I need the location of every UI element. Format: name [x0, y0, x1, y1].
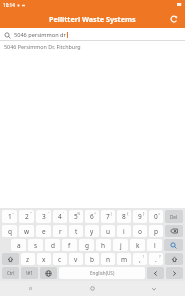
button[interactable]: r: [53, 225, 67, 237]
staticText: ^: [94, 211, 97, 216]
button[interactable]: q: [2, 225, 17, 237]
button[interactable]: `: [53, 210, 67, 223]
staticText: w: [24, 227, 30, 236]
staticText: 10:14: [3, 2, 15, 8]
staticText: 2: [25, 212, 29, 221]
button[interactable]: 5046 Persimmon Dr, Fitchburg: [0, 41, 185, 52]
staticText: x: [42, 255, 46, 264]
staticText: Pellitteri Waste Systems: [49, 14, 136, 24]
staticText: 9: [138, 212, 142, 221]
button[interactable]: w: [19, 225, 34, 237]
button[interactable]: z: [21, 253, 35, 265]
staticText: m: [121, 255, 128, 264]
button[interactable]: 5046 persimmon dr: [0, 28, 185, 41]
staticText: z: [26, 255, 30, 264]
button[interactable]: g: [79, 239, 94, 251]
button[interactable]: l: [147, 239, 162, 251]
staticText: t: [75, 227, 78, 236]
button[interactable]: y: [85, 225, 99, 237]
button[interactable]: u: [101, 225, 115, 237]
button[interactable]: p: [149, 225, 163, 237]
button[interactable]: |: [101, 210, 115, 223]
staticText: 5046 Persimmon Dr, Fitchburg: [4, 43, 81, 50]
button[interactable]: n: [101, 253, 115, 265]
staticText: e: [42, 227, 46, 236]
button[interactable]: [147, 267, 164, 279]
button[interactable]: ?: [149, 253, 163, 265]
staticText: 8: [122, 212, 126, 221]
staticText: a: [17, 241, 21, 250]
staticText: 4: [58, 212, 62, 221]
button[interactable]: ~: [2, 210, 17, 223]
button[interactable]: x: [37, 253, 51, 265]
button[interactable]: ': [36, 210, 51, 223]
button[interactable]: Ctrl: [2, 267, 19, 279]
button[interactable]: {: [117, 210, 131, 223]
button[interactable]: [165, 253, 183, 265]
button[interactable]: ": [19, 210, 34, 223]
staticText: %: [77, 211, 81, 216]
staticText: ?: [159, 254, 161, 259]
button[interactable]: Recent apps: [123, 281, 185, 296]
staticText: 6: [90, 212, 94, 221]
button[interactable]: English(US): [59, 267, 145, 279]
staticText: y: [90, 227, 94, 236]
button[interactable]: [40, 267, 57, 279]
staticText: v: [74, 255, 78, 264]
staticText: 5046 persimmon dr: [14, 31, 66, 39]
staticText: 0: [154, 212, 158, 221]
staticText: c: [58, 255, 62, 264]
button[interactable]: ^: [85, 210, 99, 223]
button[interactable]: Back: [0, 281, 61, 296]
staticText: |: [110, 211, 113, 216]
staticText: Del: [170, 214, 178, 220]
button[interactable]: Refresh: [167, 12, 180, 25]
staticText: n: [106, 255, 111, 264]
staticText: f: [68, 241, 71, 250]
staticText: !#1: [26, 270, 33, 276]
button[interactable]: v: [69, 253, 83, 265]
button[interactable]: !#1: [21, 267, 38, 279]
button[interactable]: b: [85, 253, 99, 265]
button[interactable]: Del: [165, 210, 183, 223]
button[interactable]: e: [36, 225, 51, 237]
button[interactable]: h: [96, 239, 111, 251]
staticText: h: [101, 241, 106, 250]
button[interactable]: [166, 267, 183, 279]
button[interactable]: s: [28, 239, 43, 251]
staticText: j: [120, 241, 122, 250]
staticText: 5: [74, 212, 78, 221]
button[interactable]: m: [117, 253, 131, 265]
button[interactable]: f: [62, 239, 77, 251]
button[interactable]: a: [11, 239, 26, 251]
button[interactable]: %: [69, 210, 83, 223]
button[interactable]: !: [133, 253, 147, 265]
button[interactable]: c: [53, 253, 67, 265]
staticText: ': [48, 211, 49, 216]
staticText: k: [136, 241, 140, 250]
staticText: 1: [8, 212, 12, 221]
button[interactable]: =: [149, 210, 163, 223]
button[interactable]: }: [133, 210, 147, 223]
button[interactable]: [2, 253, 19, 265]
staticText: o: [138, 227, 142, 236]
button[interactable]: [164, 239, 183, 251]
staticText: d: [51, 241, 55, 250]
staticText: }: [143, 211, 145, 216]
button[interactable]: d: [45, 239, 60, 251]
staticText: .: [155, 255, 157, 264]
button[interactable]: [165, 225, 183, 237]
button[interactable]: i: [117, 225, 131, 237]
button[interactable]: k: [130, 239, 145, 251]
staticText: 3: [42, 212, 46, 221]
staticText: {: [127, 211, 129, 216]
staticText: !: [143, 254, 145, 259]
staticText: l: [154, 241, 156, 250]
button[interactable]: j: [113, 239, 128, 251]
staticText: ~: [12, 211, 15, 216]
button[interactable]: o: [133, 225, 147, 237]
button[interactable]: Home: [61, 281, 123, 296]
staticText: ": [30, 211, 32, 216]
button[interactable]: t: [69, 225, 83, 237]
staticText: q: [8, 227, 12, 236]
